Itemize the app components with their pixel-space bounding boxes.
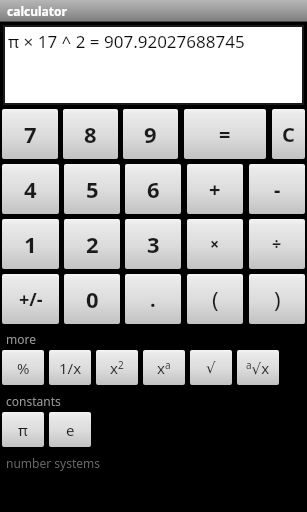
button[interactable]: e: [49, 412, 91, 447]
button[interactable]: x2: [96, 350, 138, 385]
button[interactable]: 5: [64, 164, 120, 214]
staticText: C: [282, 121, 295, 148]
staticText: -: [274, 176, 281, 203]
staticText: %: [17, 358, 30, 378]
staticText: ): [274, 284, 281, 314]
button[interactable]: 7: [2, 109, 58, 159]
button[interactable]: .: [125, 274, 181, 324]
button[interactable]: 0: [64, 274, 120, 324]
button[interactable]: 8: [63, 109, 118, 159]
button[interactable]: +: [187, 164, 243, 214]
button[interactable]: +/-: [2, 274, 59, 324]
staticText: a√x: [246, 358, 270, 378]
button[interactable]: 9: [123, 109, 178, 159]
button[interactable]: ÷: [249, 219, 305, 269]
button[interactable]: %: [2, 350, 44, 385]
staticText: e: [66, 420, 75, 440]
button[interactable]: (: [187, 274, 243, 324]
staticText: 2: [86, 229, 99, 259]
staticText: 1/x: [59, 358, 82, 378]
button[interactable]: 1: [2, 219, 59, 269]
staticText: 1: [24, 229, 37, 259]
button[interactable]: a√x: [237, 350, 279, 385]
staticText: more: [6, 331, 36, 347]
staticText: +/-: [19, 287, 43, 312]
button[interactable]: 4: [2, 164, 59, 214]
staticText: calculator: [7, 3, 67, 19]
button[interactable]: xa: [143, 350, 185, 385]
staticText: √: [206, 359, 216, 376]
staticText: (: [212, 284, 219, 314]
button[interactable]: 3: [125, 219, 181, 269]
button[interactable]: 2: [64, 219, 120, 269]
staticText: π: [18, 420, 28, 440]
staticText: number systems: [6, 455, 100, 471]
staticText: 6: [147, 174, 160, 204]
staticText: 5: [86, 174, 99, 204]
staticText: ÷: [272, 233, 282, 255]
button[interactable]: π: [2, 412, 44, 447]
staticText: constants: [6, 393, 61, 409]
button[interactable]: 6: [125, 164, 181, 214]
button[interactable]: -: [249, 164, 305, 214]
staticText: 3: [147, 229, 160, 259]
staticText: 9: [144, 119, 157, 149]
staticText: =: [219, 121, 231, 148]
button[interactable]: ): [249, 274, 305, 324]
button[interactable]: ×: [187, 219, 243, 269]
staticText: 0: [86, 284, 99, 314]
staticText: 8: [84, 119, 97, 149]
button[interactable]: =: [184, 109, 266, 159]
staticText: ×: [210, 233, 220, 255]
button[interactable]: 1/x: [49, 350, 91, 385]
staticText: xa: [157, 358, 171, 378]
staticText: x2: [110, 358, 124, 378]
staticText: 7: [24, 119, 37, 149]
button[interactable]: C: [272, 109, 305, 159]
staticText: .: [150, 286, 156, 313]
button[interactable]: √: [190, 350, 232, 385]
staticText: +: [209, 176, 221, 203]
staticText: π × 17 ^ 2 = 907.92027688745: [8, 30, 245, 53]
staticText: 4: [24, 174, 37, 204]
